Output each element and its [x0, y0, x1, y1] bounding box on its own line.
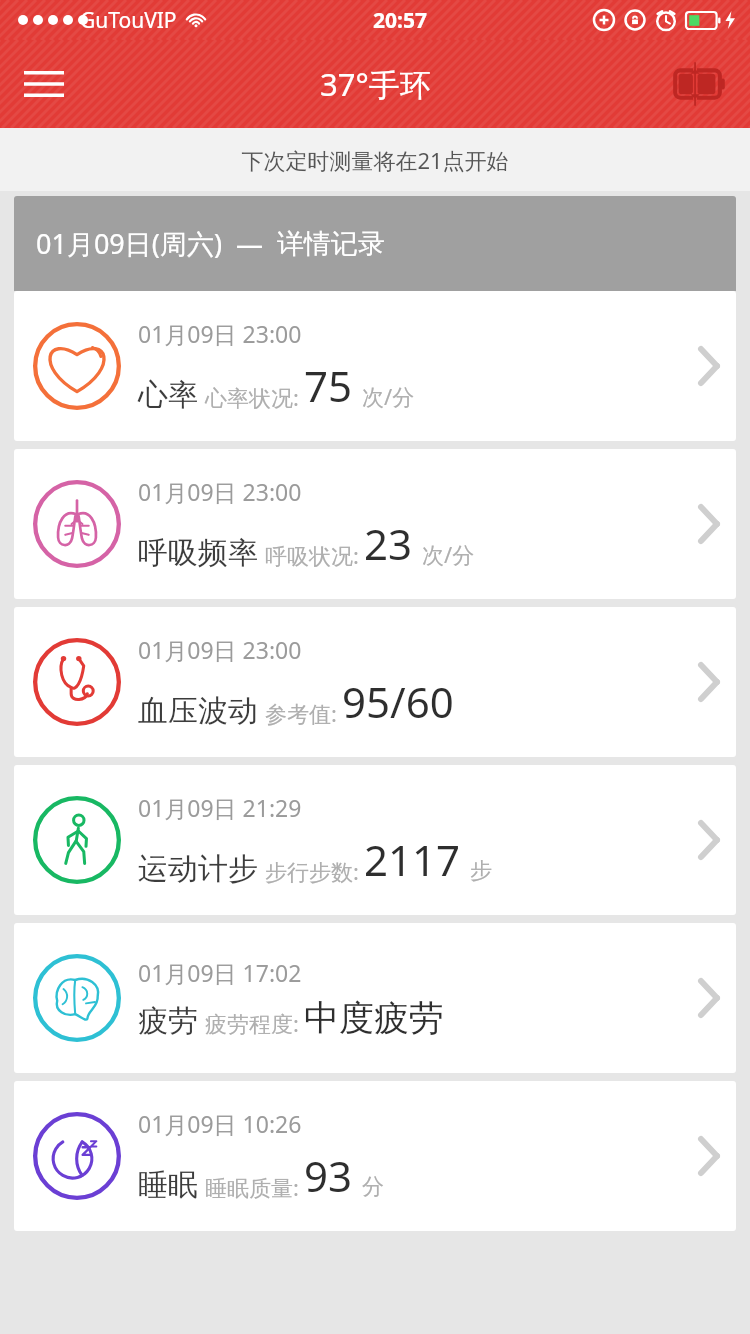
staticText: 呼吸频率	[138, 534, 258, 572]
button[interactable]: Device battery	[662, 46, 738, 122]
button[interactable]: Menu	[10, 50, 78, 118]
staticText: 血压波动	[138, 692, 258, 730]
staticText: 参考值:	[265, 698, 337, 728]
staticText: 23	[364, 515, 413, 572]
button[interactable]: 01月09日 23:00	[14, 291, 736, 441]
button[interactable]: 01月09日 23:00	[14, 449, 736, 599]
button[interactable]: 01月09日 21:29	[14, 765, 736, 915]
staticText: 睡眠	[138, 1166, 198, 1204]
button[interactable]: 01月09日 17:02	[14, 923, 736, 1073]
button[interactable]: 01月09日 10:26	[14, 1081, 736, 1231]
staticText: 次/分	[362, 381, 415, 411]
staticText: 分	[362, 1173, 384, 1201]
staticText: 次/分	[422, 539, 475, 569]
staticText: 01月09日 10:26	[138, 1108, 302, 1139]
staticText: GuTouVIP	[80, 6, 177, 35]
staticText: 75	[304, 357, 353, 414]
staticText: 01月09日 23:00	[138, 634, 302, 665]
staticText: 中度疲劳	[304, 996, 444, 1040]
staticText: —	[236, 225, 263, 262]
staticText: 疲劳	[138, 1002, 198, 1040]
staticText: 心率状况:	[205, 382, 299, 412]
button[interactable]: 01月09日 23:00	[14, 607, 736, 757]
button[interactable]: 01月09日(周六)	[14, 196, 736, 291]
staticText: 01月09日 23:00	[138, 318, 302, 349]
staticText: 01月09日(周六)	[36, 225, 222, 262]
staticText: 2117	[364, 831, 461, 888]
staticText: 93	[304, 1147, 353, 1204]
staticText: 步	[470, 857, 492, 885]
staticText: 运动计步	[138, 850, 258, 888]
staticText: 详情记录	[277, 227, 385, 261]
staticText: 睡眠质量:	[205, 1172, 299, 1202]
staticText: 下次定时测量将在21点开始	[241, 145, 509, 175]
staticText: 37°手环	[320, 63, 431, 105]
staticText: 心率	[138, 376, 198, 414]
staticText: 疲劳程度:	[205, 1008, 299, 1038]
staticText: 95/60	[342, 673, 454, 730]
staticText: 步行步数:	[265, 856, 359, 886]
staticText: 20:57	[373, 6, 427, 35]
staticText: 01月09日 21:29	[138, 792, 302, 823]
staticText: 01月09日 17:02	[138, 957, 302, 988]
staticText: 01月09日 23:00	[138, 476, 302, 507]
staticText: 呼吸状况:	[265, 540, 359, 570]
